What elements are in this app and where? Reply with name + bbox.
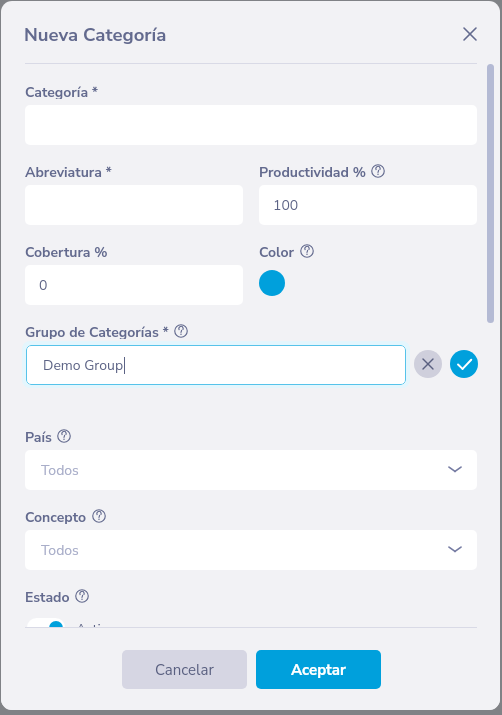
staticText: Grupo de Categorías * [25,323,169,339]
staticText: Estado [25,588,70,604]
staticText: País [25,428,52,444]
button[interactable]: Activo [27,618,116,637]
button[interactable]: Demo Group [26,345,406,385]
button[interactable]: Cancelar [122,650,247,689]
staticText: Cobertura % [25,243,108,259]
button[interactable]: Todos [25,450,477,490]
staticText: 100 [273,196,299,215]
staticText: Demo Group [43,356,124,375]
staticText: Todos [41,461,79,480]
button[interactable]: 0 [25,265,243,305]
button[interactable]: 100 [259,185,477,225]
staticText: Categoría * [25,83,99,99]
staticText: Todos [41,541,79,560]
button[interactable]: Aceptar [256,650,381,689]
staticText: Color [259,243,295,259]
button[interactable]: Todos [25,530,477,570]
staticText: Nueva Categoría [24,22,167,47]
staticText: Aceptar [291,660,346,680]
button[interactable]: Confirmar [450,350,478,378]
button[interactable]: Limpiar [414,350,442,378]
staticText: Cancelar [155,660,214,680]
button[interactable]: Color [259,270,285,296]
button[interactable]: Cerrar [457,21,483,47]
staticText: 0 [39,276,48,295]
staticText: Abreviatura * [25,163,112,179]
staticText: Activo [76,620,116,639]
staticText: Concepto [25,508,87,524]
staticText: Productividad % [259,163,366,179]
